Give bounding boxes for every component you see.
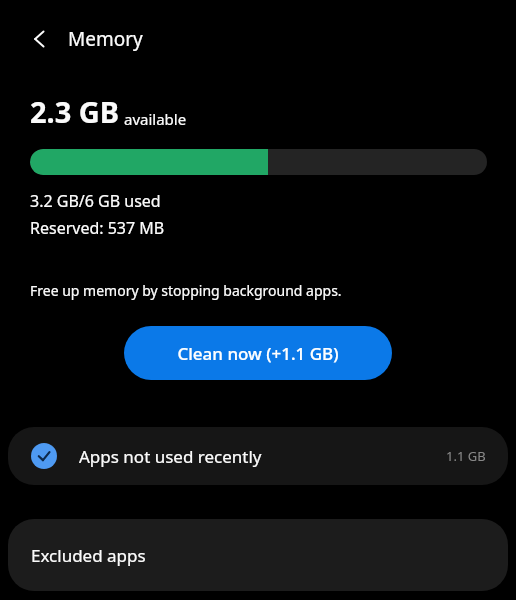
staticText: Memory [68, 26, 143, 52]
button[interactable]: Back [18, 17, 62, 61]
button[interactable]: Excluded apps [8, 519, 508, 591]
staticText: Reserved: 537 MB [30, 217, 165, 239]
staticText: 2.3 GB [30, 92, 120, 131]
staticText: 1.1 GB [446, 447, 486, 465]
staticText: Excluded apps [31, 544, 146, 567]
staticText: Free up memory by stopping background ap… [30, 281, 342, 300]
staticText: 3.2 GB/6 GB used [30, 190, 161, 212]
button[interactable]: Apps not used recently [8, 427, 508, 485]
staticText: Clean now (+1.1 GB) [177, 342, 339, 365]
staticText: available [124, 109, 187, 129]
staticText: Apps not used recently [79, 445, 262, 468]
button[interactable]: Clean now (+1.1 GB) [124, 326, 392, 380]
